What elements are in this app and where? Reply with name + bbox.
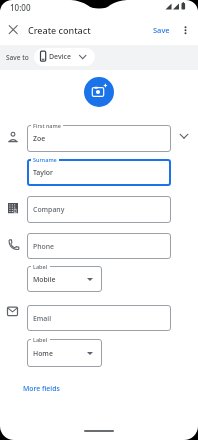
staticText: Zoe (33, 134, 46, 143)
staticText: First name (33, 122, 61, 129)
staticText: Home (33, 349, 53, 358)
staticText: Label (33, 263, 48, 270)
button[interactable]: Company (27, 196, 171, 223)
button[interactable]: Zoe (27, 125, 171, 152)
staticText: Taylor (33, 168, 53, 177)
staticText: Phone (33, 242, 55, 251)
button[interactable]: Taylor (27, 159, 171, 186)
staticText: More fields (23, 384, 60, 393)
button[interactable]: Home (27, 339, 102, 367)
button[interactable]: More fields (18, 381, 62, 395)
staticText: Mobile (33, 275, 56, 284)
button[interactable]: Device (34, 48, 95, 66)
staticText: Create contact (28, 24, 91, 36)
staticText: Surname (33, 156, 57, 163)
button[interactable]: Mobile (27, 266, 102, 292)
button[interactable] (5, 23, 19, 37)
button[interactable] (179, 23, 192, 37)
button[interactable]: Save (148, 22, 174, 38)
staticText: Save (153, 25, 170, 35)
staticText: Label (33, 336, 48, 343)
button[interactable] (84, 77, 114, 107)
button[interactable]: Phone (27, 233, 171, 259)
staticText: Save to (6, 53, 29, 62)
staticText: Device (49, 52, 72, 62)
staticText: Email (33, 314, 52, 323)
staticText: 10:00 (10, 2, 31, 13)
staticText: Company (33, 205, 65, 214)
button[interactable]: Email (27, 305, 171, 331)
